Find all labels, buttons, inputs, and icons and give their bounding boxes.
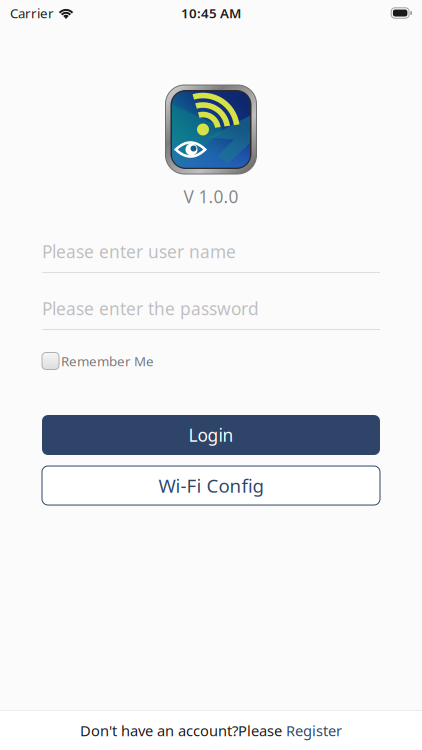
staticText: 10:45 AM — [181, 4, 241, 22]
staticText: Please enter the password — [42, 297, 259, 320]
button[interactable]: Remember Me — [42, 348, 380, 374]
staticText: Login — [188, 423, 233, 446]
button[interactable]: Don't have an account?Please — [0, 711, 422, 750]
staticText: Wi-Fi Config — [158, 473, 263, 498]
staticText: Don't have an account?Please — [80, 721, 286, 740]
button[interactable]: Login — [42, 415, 380, 455]
button[interactable]: Wi-Fi Config — [42, 466, 380, 505]
staticText: Carrier — [10, 4, 54, 22]
staticText: Please enter user name — [42, 240, 236, 263]
staticText: Register — [286, 721, 342, 740]
staticText: Remember Me — [61, 352, 154, 370]
staticText: V 1.0.0 — [183, 185, 238, 208]
